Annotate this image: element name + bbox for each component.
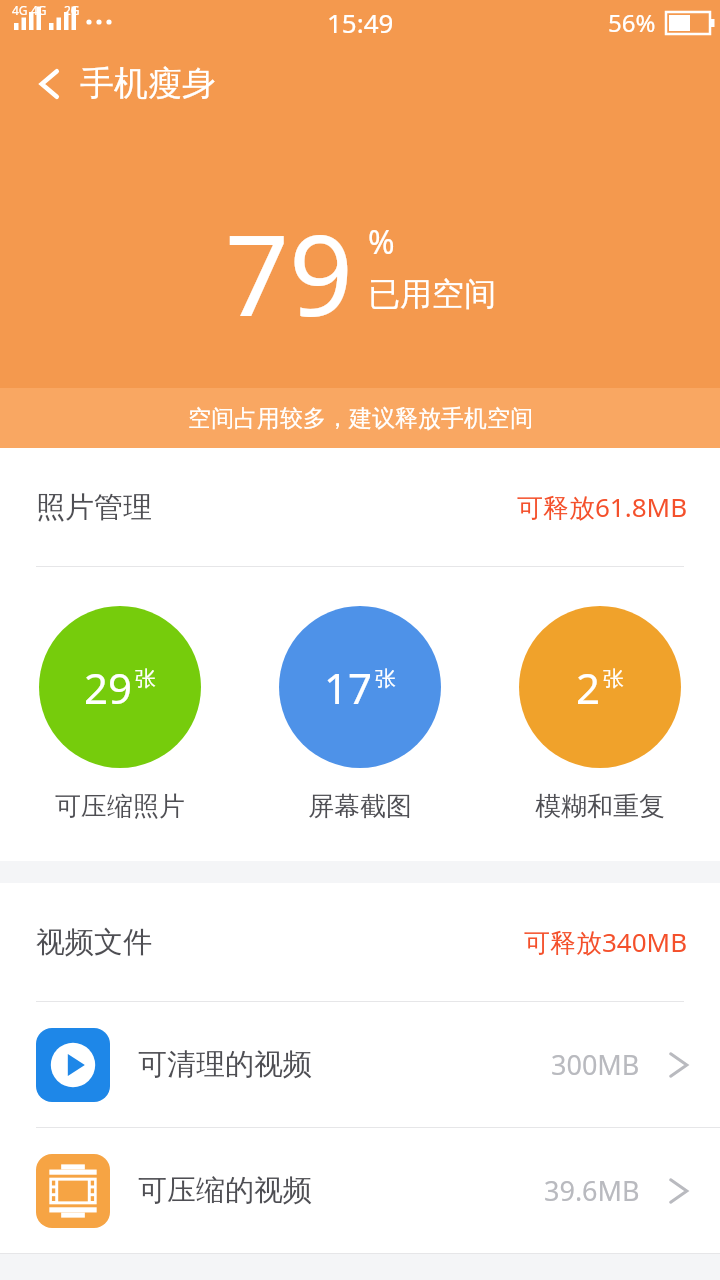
other: Open 可清理的视频 [666,1045,692,1085]
button[interactable]: 可压缩的视频 [0,1128,720,1253]
staticText: 4G [12,2,28,18]
staticText: 手机瘦身 [80,62,216,105]
staticText: 17 [324,659,373,716]
staticText: 张 [375,666,396,692]
staticText: 可清理的视频 [138,1046,312,1083]
staticText: 张 [603,666,624,692]
staticText: 79 [225,196,354,349]
other: Open 可压缩的视频 [666,1171,692,1211]
staticText: 可释放340MB [524,924,688,960]
staticText: 屏幕截图 [308,790,412,823]
staticText: 300MB [551,1046,640,1083]
staticText: 56% [608,6,656,39]
button[interactable]: Back, 手机瘦身 [36,62,720,105]
staticText: 2G [64,2,80,18]
staticText: 模糊和重复 [535,790,665,823]
button[interactable]: 29 [0,567,240,861]
staticText: 可压缩的视频 [138,1172,312,1209]
staticText: 照片管理 [36,489,152,526]
staticText: 可释放61.8MB [517,489,688,525]
staticText: 15:49 [327,5,394,40]
staticText: 张 [135,666,156,692]
staticText: 29 [84,659,133,716]
staticText: 视频文件 [36,924,152,961]
staticText: 39.6MB [544,1172,640,1209]
staticText: 已用空间 [368,274,496,314]
button[interactable]: 可清理的视频 [0,1002,720,1127]
button[interactable]: 17 [240,567,480,861]
staticText: % [368,220,395,264]
staticText: 4G [31,2,47,18]
staticText: 可压缩照片 [55,790,185,823]
staticText: 空间占用较多，建议释放手机空间 [188,404,533,433]
staticText: 2 [576,659,601,716]
button[interactable]: 2 [480,567,720,861]
